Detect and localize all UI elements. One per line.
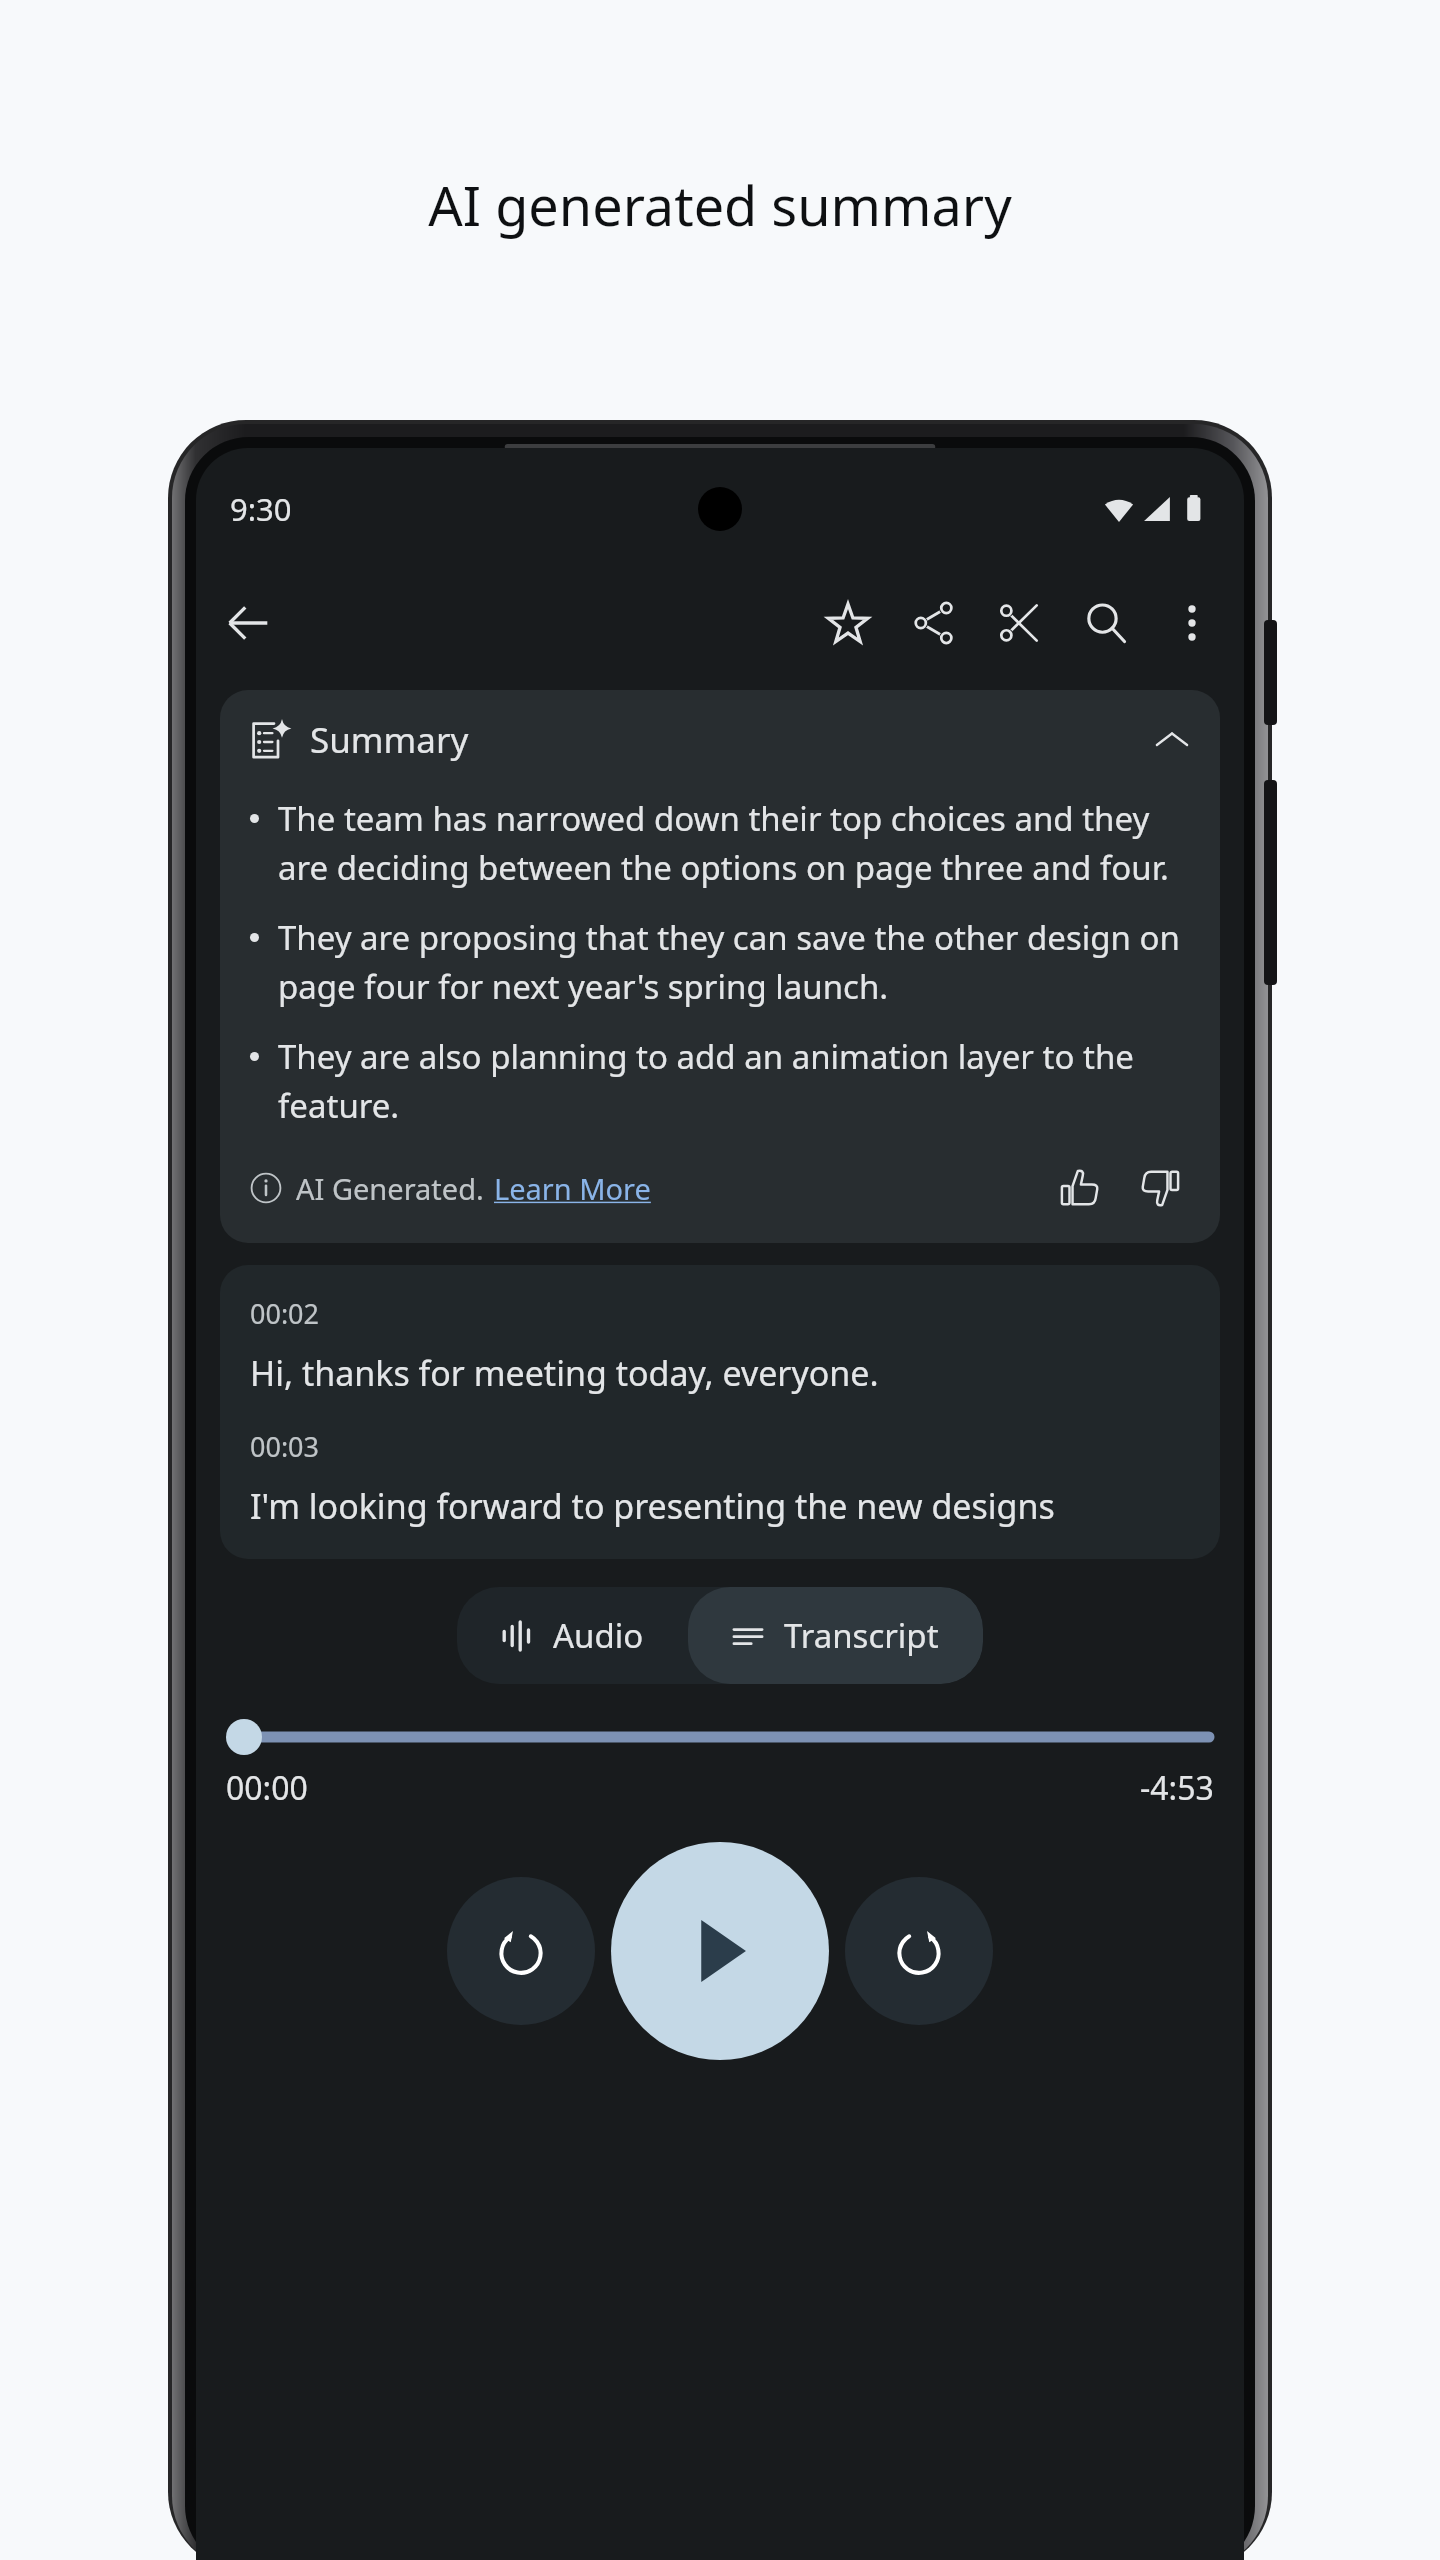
- button[interactable]: Learn More: [494, 1169, 651, 1208]
- staticText: 00:02: [250, 1295, 320, 1332]
- other: Collapse: [1154, 722, 1190, 758]
- button[interactable]: Transcript: [688, 1587, 983, 1684]
- button[interactable]: Play: [611, 1842, 829, 2060]
- staticText: Learn More: [494, 1169, 651, 1208]
- staticText: -4:53: [1140, 1766, 1214, 1810]
- button[interactable]: Search: [1074, 591, 1138, 655]
- button[interactable]: Share: [902, 591, 966, 655]
- button[interactable]: Trim: [988, 591, 1052, 655]
- staticText: Hi, thanks for meeting today, everyone.: [250, 1350, 879, 1396]
- button[interactable]: Thumbs down: [1132, 1159, 1190, 1217]
- staticText: AI Generated.: [296, 1169, 484, 1208]
- button[interactable]: Forward 10 seconds: [845, 1877, 993, 2025]
- button[interactable]: Rewind 5 seconds: [447, 1877, 595, 2025]
- staticText: They are also planning to add an animati…: [278, 1034, 1190, 1127]
- button[interactable]: Back: [216, 591, 280, 655]
- staticText: 00:00: [226, 1766, 308, 1810]
- staticText: 00:03: [250, 1428, 320, 1465]
- staticText: Summary: [310, 716, 469, 764]
- staticText: Audio: [553, 1613, 644, 1658]
- button[interactable]: 00:02: [220, 1265, 1220, 1559]
- button[interactable]: Star: [816, 591, 880, 655]
- button[interactable]: Audio: [457, 1587, 688, 1684]
- button[interactable]: [226, 1720, 1214, 1754]
- staticText: 9:30: [230, 488, 292, 530]
- button[interactable]: More options: [1160, 591, 1224, 655]
- button[interactable]: Thumbs up: [1050, 1159, 1108, 1217]
- staticText: The team has narrowed down their top cho…: [278, 796, 1190, 889]
- staticText: I'm looking forward to presenting the ne…: [250, 1483, 1055, 1529]
- staticText: They are proposing that they can save th…: [278, 915, 1190, 1008]
- staticText: AI generated summary: [428, 168, 1012, 242]
- button[interactable]: Summary: [250, 690, 1190, 790]
- staticText: Transcript: [784, 1613, 939, 1658]
